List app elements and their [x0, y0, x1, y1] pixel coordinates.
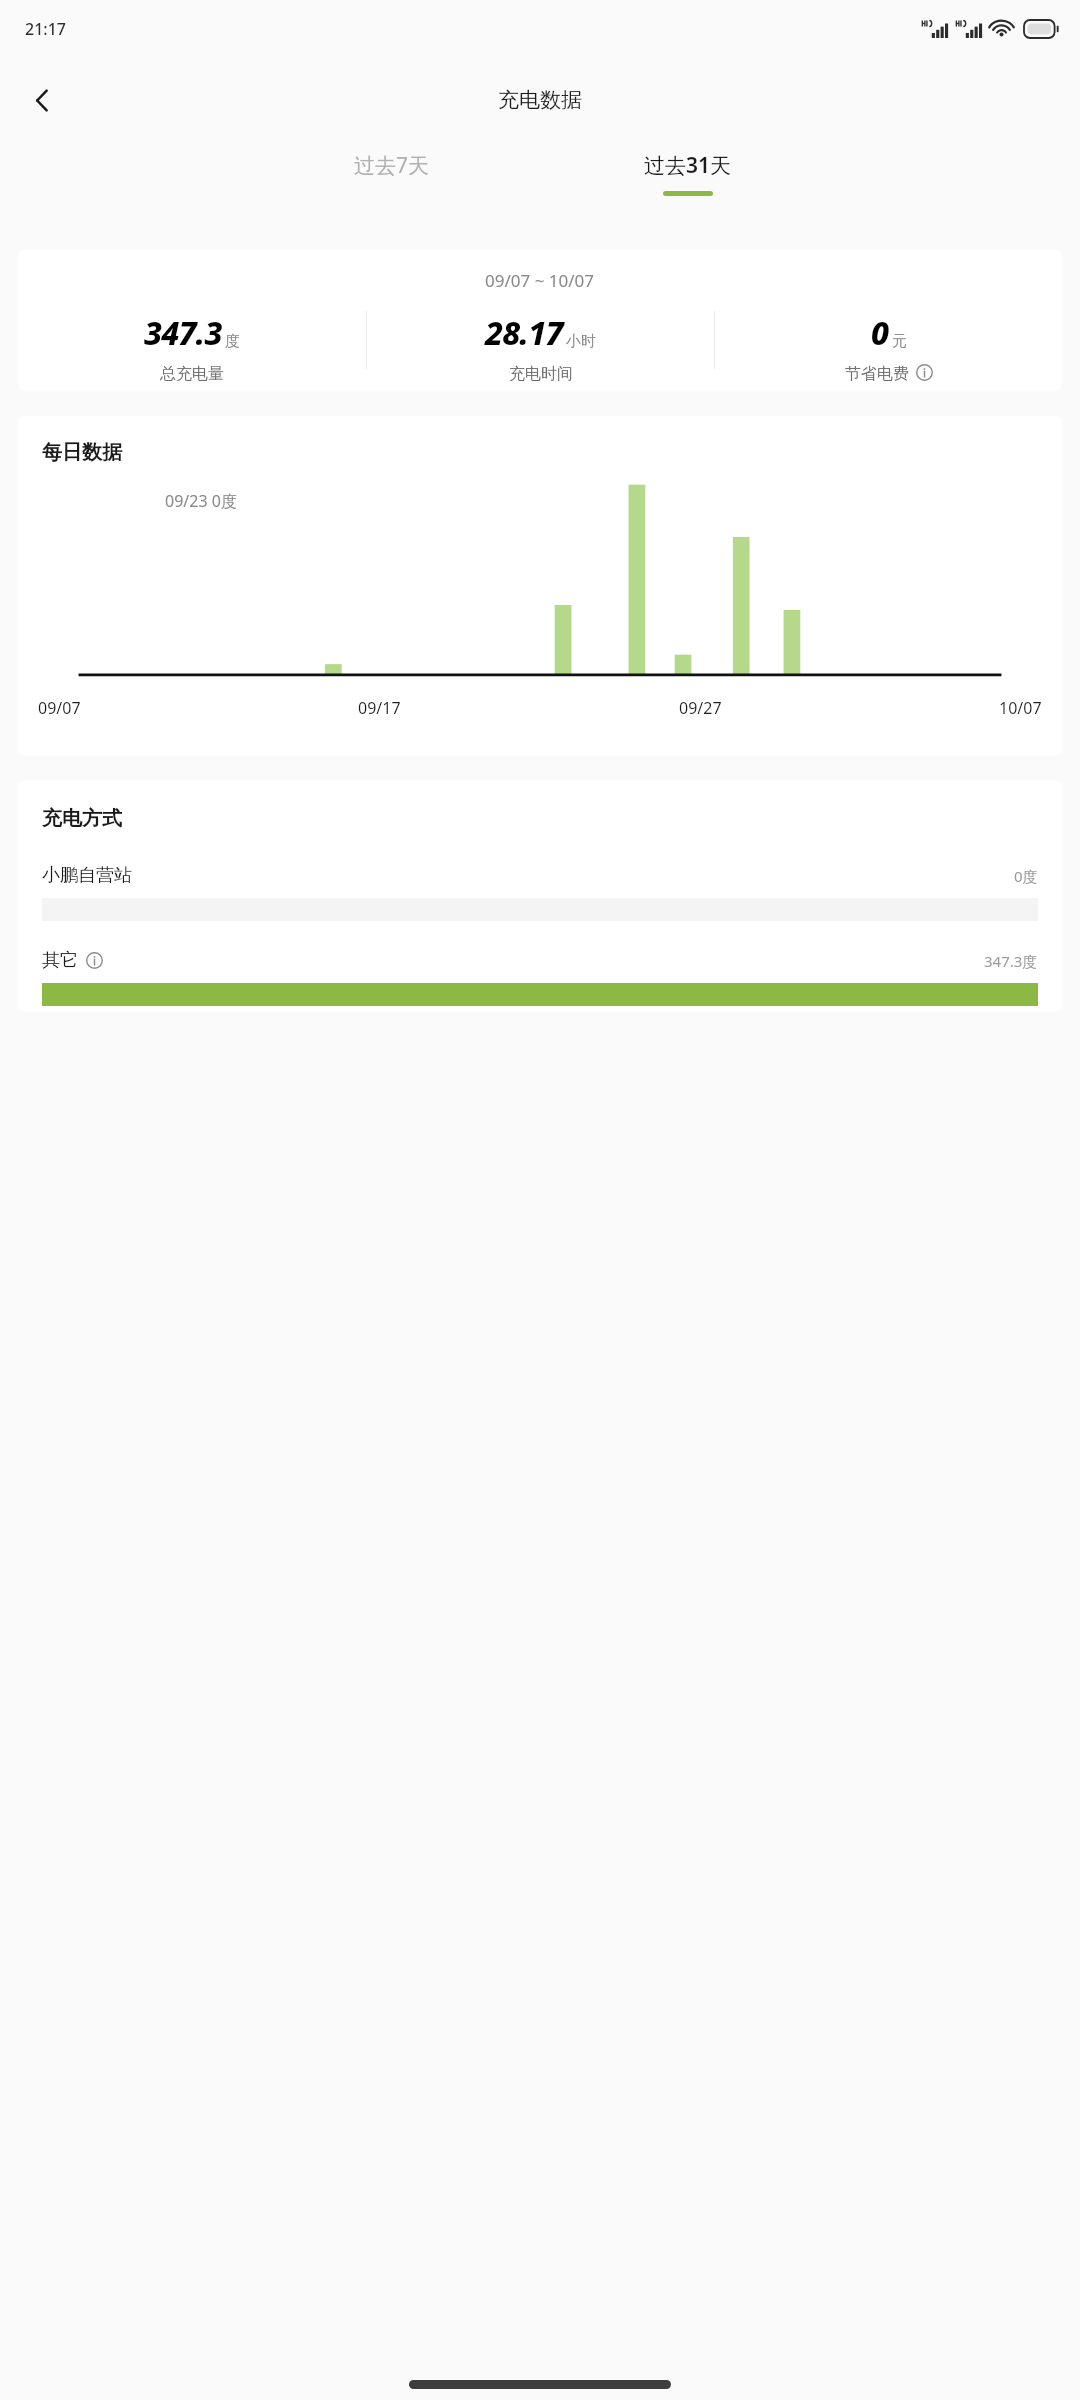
staticText: 09/27 — [679, 697, 722, 719]
staticText: 09/07 ~ 10/07 — [485, 269, 595, 292]
staticText: 28.17 — [485, 311, 563, 355]
button[interactable]: Back — [14, 72, 70, 128]
staticText: 度 — [225, 332, 240, 351]
staticText: 过去31天 — [644, 151, 732, 180]
staticText: 元 — [892, 332, 907, 351]
staticText: 其它 — [42, 949, 78, 972]
staticText: 21:17 — [25, 18, 66, 40]
staticText: 小鹏自营站 — [42, 864, 132, 887]
staticText: 09/17 — [358, 697, 401, 719]
staticText: 0 — [871, 311, 889, 355]
staticText: 09/07 — [38, 697, 81, 719]
staticText: 总充电量 — [160, 364, 224, 381]
staticText: 每日数据 — [42, 440, 122, 465]
staticText: 充电时间 — [509, 364, 573, 381]
button[interactable]: 其它 — [42, 949, 1038, 1006]
button[interactable]: 过去7天 — [294, 142, 490, 196]
staticText: 小时 — [566, 332, 596, 351]
staticText: 0度 — [1014, 866, 1038, 886]
staticText: 充电方式 — [42, 806, 122, 831]
staticText: 347.3度 — [984, 951, 1038, 971]
staticText: 347.3 — [144, 311, 222, 355]
staticText: 过去7天 — [354, 151, 430, 180]
button[interactable]: 过去31天 — [590, 142, 786, 196]
staticText: 充电数据 — [498, 87, 582, 113]
staticText: 09/23 0度 — [165, 490, 237, 512]
button[interactable]: 小鹏自营站 — [42, 864, 1038, 921]
staticText: 节省电费 — [845, 364, 909, 381]
staticText: 10/07 — [999, 697, 1042, 719]
